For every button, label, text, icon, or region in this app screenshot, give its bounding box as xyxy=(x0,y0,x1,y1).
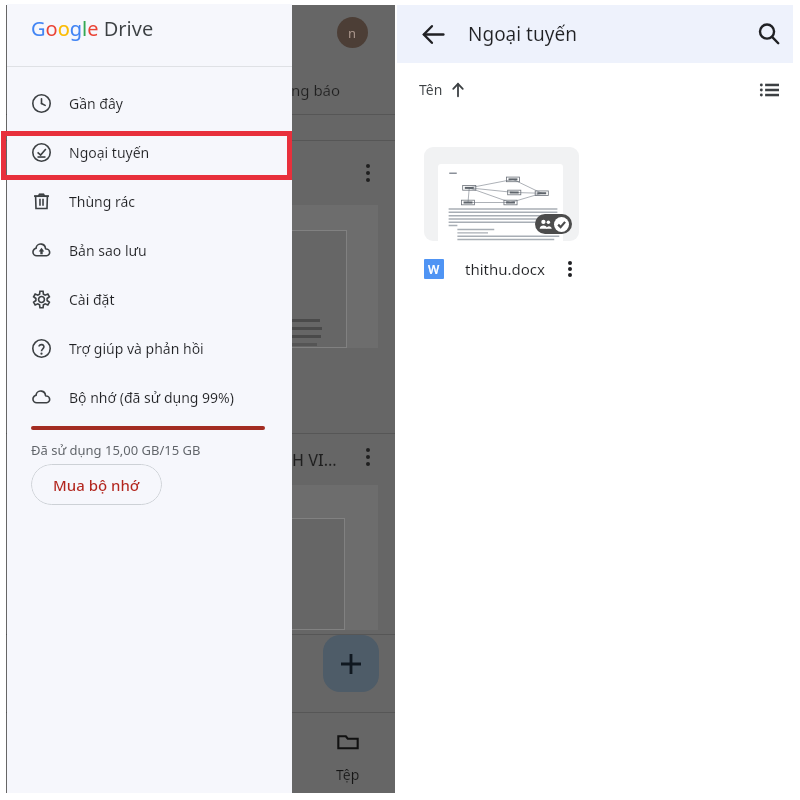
staticText: Ngoại tuyến xyxy=(468,21,577,47)
button[interactable]: Cài đặt xyxy=(7,275,292,324)
staticText: Mua bộ nhớ xyxy=(53,475,140,495)
staticText: W xyxy=(428,261,440,277)
staticText: Gần đây xyxy=(69,94,123,113)
staticText: Bản sao lưu xyxy=(69,241,147,260)
staticText: Google Drive xyxy=(31,15,154,42)
button[interactable]: Thùng rác xyxy=(7,177,292,226)
staticText: Tệp xyxy=(336,765,360,784)
button[interactable]: Switch to list view xyxy=(754,75,784,105)
button[interactable]: Back xyxy=(415,16,451,52)
button[interactable]: Create xyxy=(323,635,379,692)
button[interactable]: Gần đây xyxy=(7,79,292,128)
staticText: Đã sử dụng 15,00 GB/15 GB xyxy=(31,441,201,459)
button[interactable]: Search xyxy=(751,16,787,52)
button[interactable] xyxy=(424,147,579,241)
staticText: Trợ giúp và phản hồi xyxy=(69,339,204,358)
staticText: Cài đặt xyxy=(69,290,115,309)
staticText: n xyxy=(348,24,357,42)
staticText: Ngoại tuyến xyxy=(69,143,150,162)
staticText: H VI... xyxy=(292,449,337,471)
staticText: Tên xyxy=(419,80,443,99)
button[interactable]: Bộ nhớ (đã sử dụng 99%) xyxy=(7,373,292,422)
button[interactable]: Tên xyxy=(419,80,465,99)
staticText: ng báo xyxy=(291,80,341,100)
button[interactable]: Ngoại tuyến xyxy=(7,128,292,177)
button[interactable]: W xyxy=(424,251,579,287)
staticText: Thùng rác xyxy=(69,192,136,211)
button[interactable]: Trợ giúp và phản hồi xyxy=(7,324,292,373)
button[interactable]: Mua bộ nhớ xyxy=(31,464,162,505)
button[interactable]: Bản sao lưu xyxy=(7,226,292,275)
staticText: thithu.docx xyxy=(465,259,545,279)
button[interactable]: Tệp xyxy=(324,733,372,795)
staticText: Bộ nhớ (đã sử dụng 99%) xyxy=(69,388,234,407)
